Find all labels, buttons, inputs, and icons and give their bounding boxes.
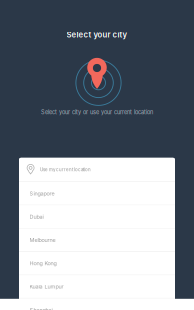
staticText: Singapore [29,190,54,197]
button[interactable]: Use my current location [19,158,175,181]
staticText: Use my current location [40,167,91,172]
staticText: Select your city or use your current loc… [41,109,153,116]
button[interactable]: Hong Kong [19,252,175,275]
staticText: Kuala Lumpur [29,283,63,290]
staticText: Melbourne [29,237,55,243]
button[interactable]: Shanghai [19,299,175,310]
staticText: Shanghai [29,307,52,310]
button[interactable]: Kuala Lumpur [19,275,175,298]
button[interactable]: Melbourne [19,229,175,251]
button[interactable]: Dubai [19,205,175,228]
button[interactable]: Singapore [19,182,175,205]
staticText: Dubai [29,213,43,220]
staticText: Hong Kong [29,260,56,267]
staticText: Select your city [66,30,127,39]
